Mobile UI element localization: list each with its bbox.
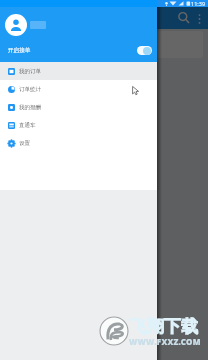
button[interactable]: Search [175, 9, 193, 27]
button[interactable]: 设置 [0, 134, 157, 152]
staticText: 开启接单 [8, 47, 31, 54]
staticText: 设置 [19, 140, 30, 147]
button[interactable]: Toggle accepting orders [137, 46, 152, 55]
staticText: 我的报酬 [19, 104, 41, 111]
button[interactable]: 我的订单 [0, 62, 157, 80]
button[interactable]: 订单统计 [0, 80, 157, 98]
button[interactable]: More options [193, 12, 206, 25]
button[interactable]: 直通车 [0, 116, 157, 134]
staticText: 11:39 [191, 0, 206, 7]
button[interactable]: Profile [5, 14, 27, 36]
staticText: 飞翔下载 [130, 316, 198, 337]
button[interactable]: 未接订单 [5, 31, 203, 58]
staticText: 我的订单 [19, 68, 41, 75]
button[interactable]: 我的报酬 [0, 98, 157, 116]
staticText: 直通车 [19, 122, 36, 129]
staticText: 订单统计 [19, 86, 41, 93]
staticText: WWW.FXXZ.COM [129, 336, 201, 347]
staticText: 订单编号：2020-11-23 11:23 [70, 52, 138, 58]
